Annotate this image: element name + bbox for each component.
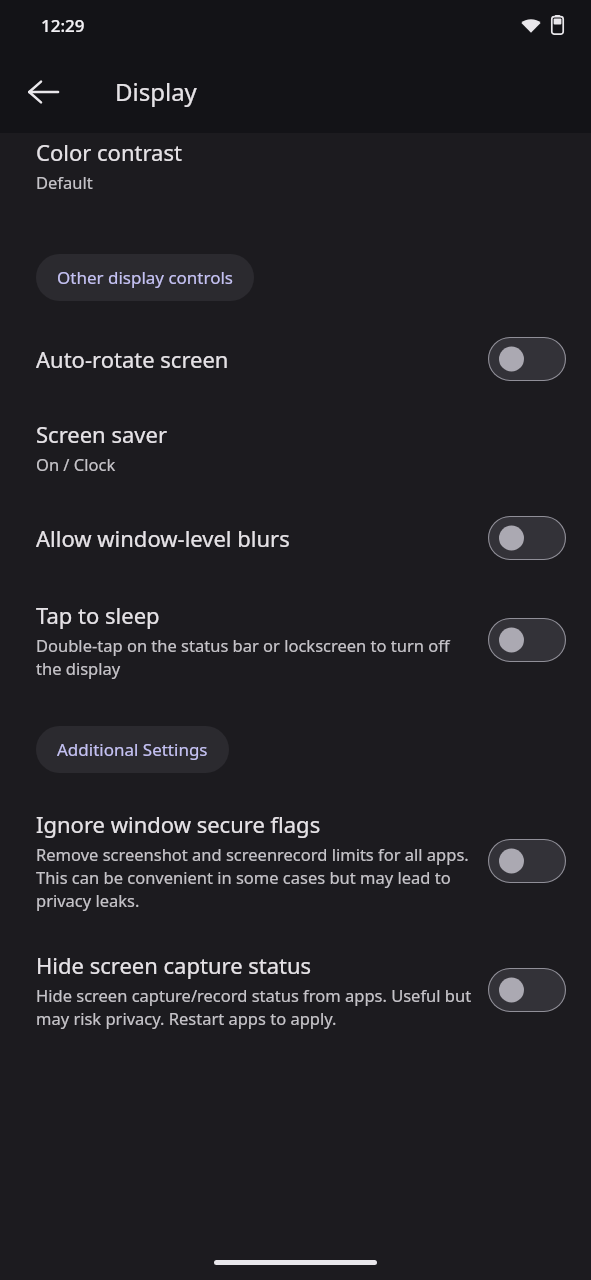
staticText: Auto-rotate screen <box>36 344 229 374</box>
staticText: Screen saver <box>36 419 167 449</box>
staticText: Hide screen capture status <box>36 950 312 980</box>
button[interactable]: Screen saver <box>0 400 591 496</box>
staticText: Double-tap on the status bar or lockscre… <box>36 634 474 680</box>
button[interactable]: Auto-rotate screen <box>0 320 591 400</box>
button[interactable]: Ignore window secure flags <box>0 792 591 931</box>
staticText: Ignore window secure flags <box>36 809 321 839</box>
button[interactable]: Allow window-level blurs <box>0 496 591 581</box>
staticText: On / Clock <box>36 453 116 475</box>
staticText: Additional Settings <box>57 738 208 761</box>
button[interactable]: Toggle setting <box>488 516 566 560</box>
staticText: Default <box>36 171 93 193</box>
staticText: Allow window-level blurs <box>36 523 290 553</box>
button[interactable]: Hide screen capture status <box>0 931 591 1049</box>
staticText: Other display controls <box>57 266 233 289</box>
staticText: 12:29 <box>41 14 85 37</box>
button[interactable]: Toggle setting <box>488 968 566 1012</box>
staticText: Color contrast <box>36 137 182 167</box>
button[interactable]: Toggle setting <box>488 618 566 662</box>
staticText: Display <box>115 75 197 108</box>
staticText: Remove screenshot and screenrecord limit… <box>36 843 474 912</box>
staticText: Tap to sleep <box>36 600 160 630</box>
staticText: Hide screen capture/record status from a… <box>36 984 474 1030</box>
button[interactable]: Other display controls <box>36 254 254 301</box>
button[interactable]: Toggle setting <box>488 337 566 381</box>
button[interactable]: Toggle setting <box>488 839 566 883</box>
button[interactable]: Back <box>15 64 71 120</box>
button[interactable]: Tap to sleep <box>0 581 591 701</box>
button[interactable]: Additional Settings <box>36 726 229 773</box>
